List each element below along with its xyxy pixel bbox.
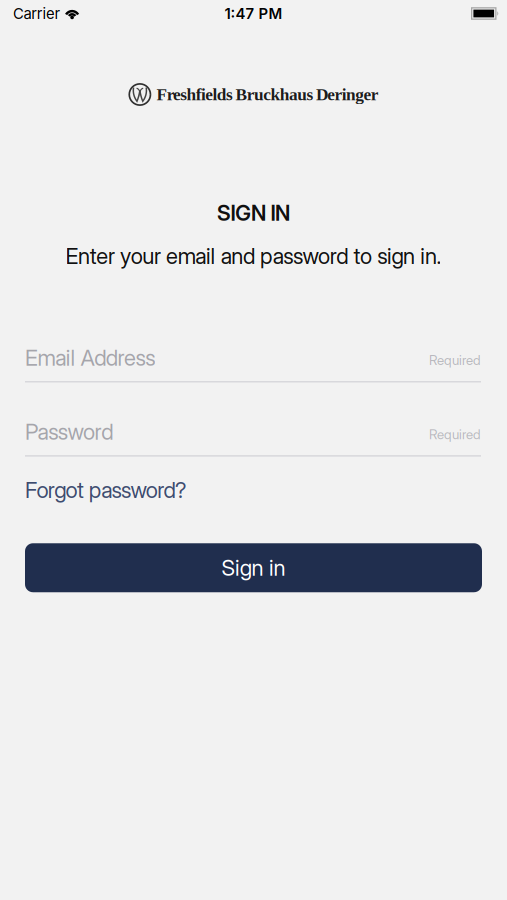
staticText: Password [25,418,113,445]
staticText: Sign in [221,554,286,581]
staticText: Carrier [13,4,61,22]
staticText: Forgot password? [25,477,187,503]
staticText: 1:47 PM [224,4,282,22]
staticText: Required [429,426,481,442]
staticText: SIGN IN [217,200,290,226]
staticText: Enter your email and password to sign in… [65,243,441,269]
staticText: Email Address [25,344,155,371]
staticText: Required [429,352,481,368]
staticText: Freshfields Bruckhaus Deringer [156,85,379,104]
